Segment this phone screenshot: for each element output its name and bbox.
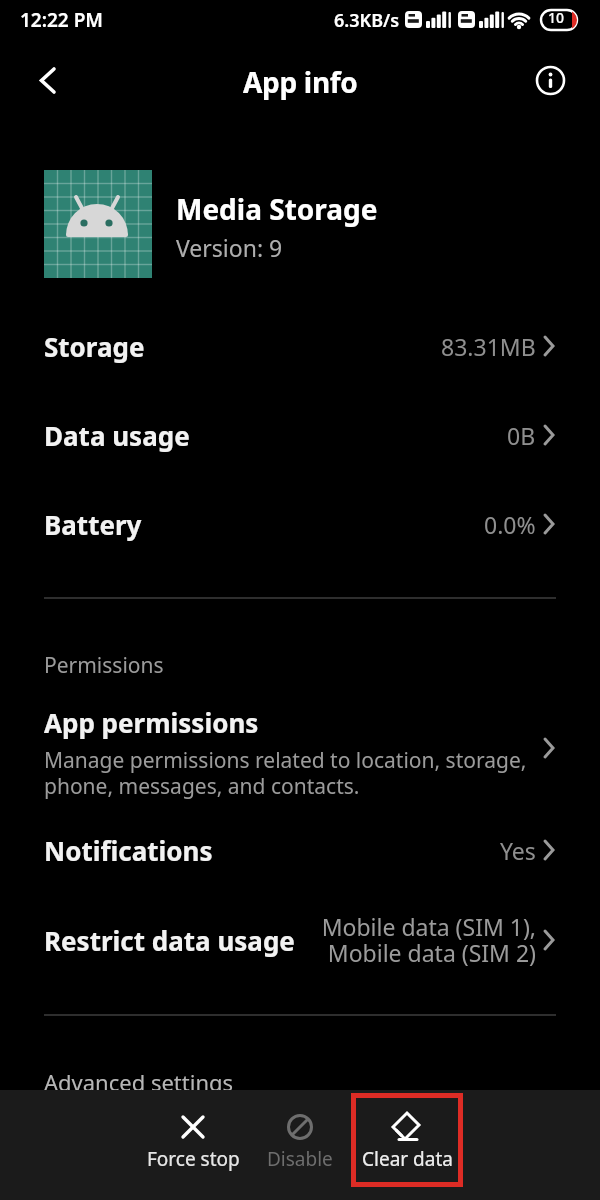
- staticText: 6.3KB/s: [334, 8, 400, 33]
- staticText: Permissions: [44, 651, 164, 680]
- button[interactable]: Force stop: [140, 1090, 246, 1200]
- button[interactable]: [24, 58, 72, 106]
- staticText: App permissions: [44, 705, 259, 740]
- staticText: Mobile data (SIM 1), Mobile data (SIM 2): [321, 911, 536, 969]
- staticText: Advanced settings: [44, 1067, 234, 1097]
- staticText: 0.0%: [484, 509, 536, 540]
- button[interactable]: Data usage: [0, 391, 600, 480]
- staticText: 0B: [507, 420, 536, 451]
- staticText: Data usage: [44, 418, 190, 453]
- staticText: Notifications: [44, 833, 213, 868]
- staticText: Media Storage: [176, 190, 378, 228]
- button[interactable]: Disable: [247, 1090, 353, 1200]
- staticText: Version: 9: [176, 232, 283, 263]
- staticText: Disable: [267, 1146, 333, 1172]
- staticText: App info: [243, 63, 358, 101]
- button[interactable]: App permissions: [0, 688, 600, 806]
- button[interactable]: Battery: [0, 480, 600, 569]
- button[interactable]: Notifications: [0, 806, 600, 895]
- staticText: 83.31MB: [441, 331, 536, 362]
- staticText: Storage: [44, 329, 145, 364]
- staticText: Battery: [44, 507, 142, 542]
- button[interactable]: Storage: [0, 302, 600, 391]
- staticText: Force stop: [147, 1146, 240, 1172]
- staticText: Yes: [500, 835, 536, 866]
- staticText: 12:22 PM: [20, 7, 103, 33]
- staticText: Clear data: [362, 1146, 453, 1172]
- button[interactable]: Clear data: [354, 1090, 460, 1200]
- staticText: Manage permissions related to location, …: [44, 746, 527, 801]
- staticText: Restrict data usage: [44, 923, 295, 958]
- button[interactable]: [528, 58, 574, 106]
- button[interactable]: Restrict data usage: [0, 895, 600, 985]
- staticText: 10: [548, 8, 565, 27]
